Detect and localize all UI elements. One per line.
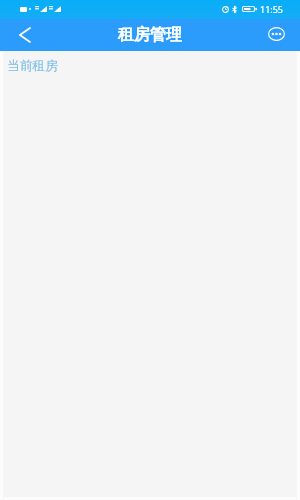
button[interactable]: More options <box>260 19 300 51</box>
staticText: 租房管理 <box>118 25 182 45</box>
button[interactable]: Back <box>0 19 48 51</box>
staticText: 当前租房 <box>7 58 59 74</box>
staticText: 11:55 <box>260 3 284 15</box>
